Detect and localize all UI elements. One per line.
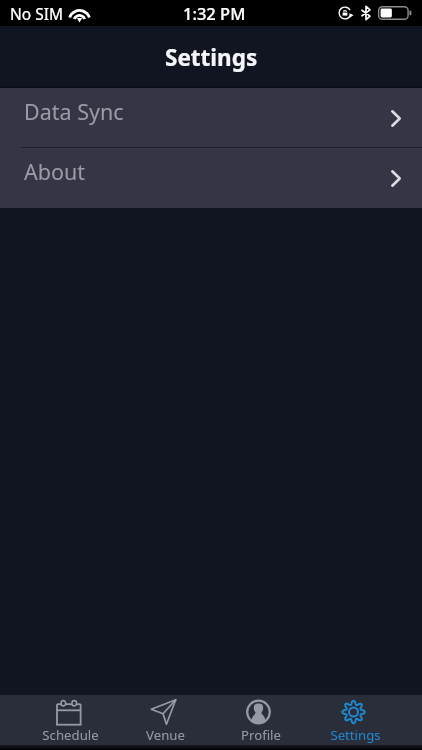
button[interactable]: About [0,148,422,208]
button[interactable]: Data Sync [0,88,422,148]
staticText: Venue [146,726,185,744]
button[interactable]: Schedule [23,695,118,745]
button[interactable]: Venue [118,695,213,745]
staticText: Settings [330,726,381,744]
button[interactable]: Settings [308,695,403,745]
staticText: No SIM [10,3,64,24]
staticText: About [24,157,86,186]
staticText: Schedule [42,726,99,744]
staticText: Settings [165,42,258,73]
button[interactable]: Profile [213,695,308,745]
staticText: Profile [241,726,281,744]
staticText: Data Sync [24,97,124,126]
staticText: 1:32 PM [183,2,246,24]
